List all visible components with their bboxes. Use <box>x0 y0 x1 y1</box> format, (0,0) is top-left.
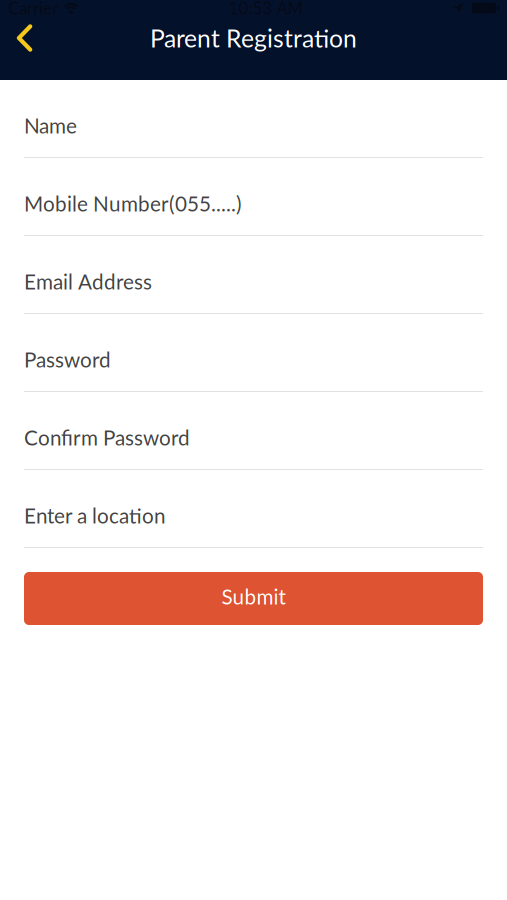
button[interactable]: Submit <box>24 572 483 625</box>
staticText: Mobile Number(055.....) <box>24 191 242 216</box>
button[interactable]: Password <box>24 314 483 392</box>
staticText: Password <box>24 347 111 372</box>
staticText: Email Address <box>24 269 152 294</box>
button[interactable]: Email Address <box>24 236 483 314</box>
staticText: Name <box>24 113 77 138</box>
button[interactable]: Mobile Number(055.....) <box>24 158 483 236</box>
staticText: Parent Registration <box>150 23 357 53</box>
staticText: Confirm Password <box>24 425 190 450</box>
staticText: 10:53 AM <box>228 0 302 18</box>
button[interactable]: Confirm Password <box>24 392 483 470</box>
button[interactable]: Enter a location <box>24 470 483 548</box>
button[interactable]: Name <box>24 80 483 158</box>
staticText: Submit <box>221 584 285 609</box>
button[interactable]: Back <box>0 16 50 60</box>
staticText: Enter a location <box>24 503 166 528</box>
staticText: Carrier <box>8 0 58 18</box>
